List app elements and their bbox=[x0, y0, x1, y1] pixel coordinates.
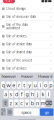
button[interactable]: x bbox=[14, 99, 18, 107]
staticText: j bbox=[37, 91, 38, 98]
button[interactable]: Use of cross-user data bbox=[0, 13, 54, 21]
staticText: b bbox=[31, 100, 34, 107]
button[interactable]: b bbox=[30, 99, 34, 107]
button[interactable]: ⇧ bbox=[2, 99, 8, 107]
staticText: o bbox=[44, 82, 47, 89]
staticText: › bbox=[51, 14, 52, 19]
staticText: u bbox=[33, 82, 36, 89]
button[interactable]: u bbox=[33, 81, 37, 89]
button[interactable]: f bbox=[20, 90, 24, 98]
staticText: ☺ bbox=[8, 110, 12, 114]
button[interactable]: r bbox=[17, 81, 21, 89]
staticText: ⇧ bbox=[3, 100, 7, 106]
staticText: g bbox=[25, 91, 28, 98]
staticText: 123 bbox=[1, 109, 5, 116]
button[interactable]: m bbox=[41, 99, 45, 107]
staticText: › bbox=[51, 42, 52, 47]
button[interactable]: k bbox=[41, 90, 45, 98]
button[interactable]: a bbox=[4, 90, 8, 98]
staticText: Cloud storage bbox=[6, 7, 26, 10]
staticText: › bbox=[51, 58, 52, 63]
staticText: Use of services bbox=[6, 34, 26, 38]
button[interactable]: i bbox=[38, 81, 42, 89]
button[interactable]: Use of services bbox=[0, 65, 54, 72]
button[interactable]: c bbox=[20, 99, 24, 107]
staticText: 9:41 bbox=[5, 0, 12, 3]
staticText: n bbox=[36, 100, 39, 107]
staticText: m bbox=[40, 100, 45, 107]
staticText: › bbox=[51, 33, 52, 39]
staticText: k bbox=[41, 91, 44, 98]
staticText: l bbox=[48, 91, 49, 98]
button[interactable]: ☺ bbox=[7, 108, 12, 116]
staticText: v bbox=[25, 100, 28, 107]
button[interactable]: Use of service data bbox=[0, 40, 54, 48]
staticText: Use of cross-user data bbox=[6, 15, 35, 18]
button[interactable]: ⌫ bbox=[46, 99, 51, 107]
staticText: i bbox=[40, 82, 41, 89]
staticText: Use of shared data bbox=[6, 50, 31, 54]
button[interactable]: v bbox=[25, 99, 29, 107]
button[interactable]: p bbox=[49, 81, 53, 89]
button[interactable]: l bbox=[46, 90, 50, 98]
staticText: Howard bbox=[38, 74, 52, 79]
staticText: q bbox=[2, 82, 5, 89]
staticText: y bbox=[28, 82, 31, 89]
staticText: Use of the data submitted bbox=[6, 23, 27, 30]
button[interactable]: g bbox=[25, 90, 29, 98]
button[interactable]: Use of services bbox=[0, 32, 54, 40]
button[interactable]: s bbox=[9, 90, 13, 98]
staticText: a bbox=[4, 91, 7, 98]
staticText: however bbox=[1, 74, 16, 79]
button[interactable]: go bbox=[40, 108, 53, 116]
button[interactable]: space bbox=[13, 108, 39, 116]
staticText: p bbox=[49, 82, 52, 89]
button[interactable]: t bbox=[22, 81, 26, 89]
button[interactable]: w bbox=[6, 81, 11, 89]
staticText: r bbox=[18, 82, 20, 89]
staticText: f bbox=[21, 91, 23, 98]
staticText: ⌫ bbox=[45, 100, 53, 106]
staticText: s bbox=[10, 91, 13, 98]
staticText: Use of service data bbox=[6, 42, 31, 46]
staticText: go bbox=[45, 109, 49, 115]
button[interactable]: z bbox=[9, 99, 13, 107]
button[interactable]: Use of the project bbox=[0, 56, 54, 64]
button[interactable]: y bbox=[27, 81, 32, 89]
button[interactable]: o bbox=[43, 81, 48, 89]
staticText: › bbox=[51, 50, 52, 55]
staticText: › bbox=[51, 24, 52, 29]
staticText: d bbox=[15, 91, 18, 98]
staticText: space bbox=[21, 109, 31, 115]
staticText: Use of services bbox=[6, 67, 26, 70]
staticText: t bbox=[23, 82, 25, 89]
button[interactable]: Cloud storage bbox=[0, 5, 54, 13]
staticText: e bbox=[12, 82, 15, 89]
staticText: › bbox=[51, 66, 52, 71]
staticText: h bbox=[31, 91, 34, 98]
button[interactable]: h bbox=[30, 90, 34, 98]
staticText: › bbox=[51, 6, 52, 11]
button[interactable]: n bbox=[35, 99, 40, 107]
button[interactable]: e bbox=[12, 81, 16, 89]
staticText: z bbox=[10, 100, 13, 107]
staticText: c bbox=[20, 100, 23, 107]
button[interactable]: 123 bbox=[0, 108, 6, 116]
button[interactable]: Use of the data submitted bbox=[0, 21, 54, 32]
button[interactable]: q bbox=[1, 81, 5, 89]
staticText: Hoover bbox=[20, 74, 33, 79]
button[interactable]: d bbox=[14, 90, 19, 98]
button[interactable]: j bbox=[35, 90, 40, 98]
staticText: Use of the project bbox=[6, 59, 32, 62]
staticText: x bbox=[15, 100, 18, 107]
button[interactable]: Use of shared data bbox=[0, 48, 54, 56]
staticText: w bbox=[6, 82, 10, 89]
